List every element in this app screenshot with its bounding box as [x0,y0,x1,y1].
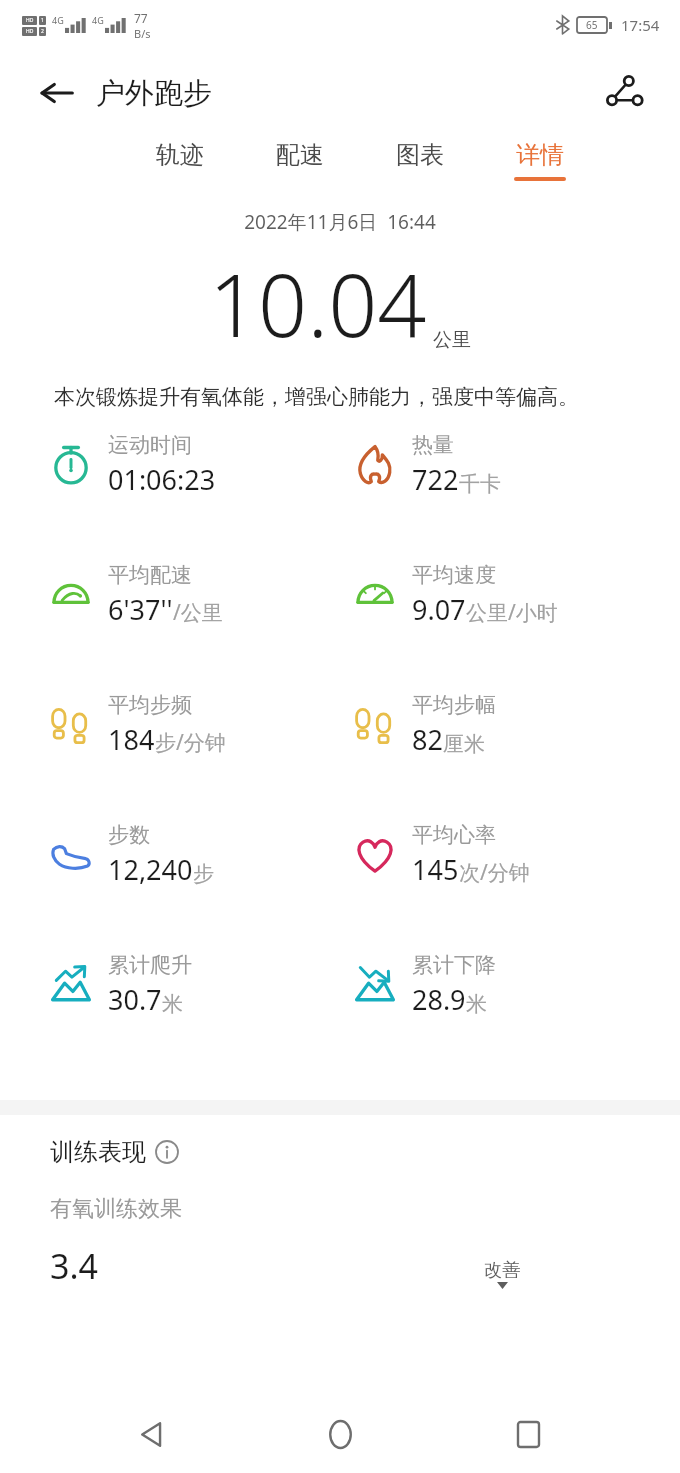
staticText: 2022年11月6日 16:44 [0,209,680,235]
staticText: 17:54 [621,15,660,35]
staticText: 轨迹 [156,140,204,170]
staticText: 次/分钟 [459,858,530,887]
button[interactable]: 热量 [348,432,680,498]
button[interactable]: Back [116,1398,188,1470]
button[interactable]: Recents [492,1398,564,1470]
button[interactable]: 图表 [390,136,450,185]
staticText: 千卡 [459,471,501,497]
staticText: 步/分钟 [155,728,226,757]
button[interactable]: 配速 [270,136,330,185]
staticText: 有氧训练效果 [50,1195,182,1223]
staticText: /公里 [173,598,223,627]
staticText: 9.07 [412,591,466,628]
staticText: B/s [134,26,151,41]
button[interactable]: Home [304,1398,376,1470]
staticText: 公里/小时 [466,598,558,627]
staticText: 12,240 [108,851,193,888]
button[interactable]: 平均心率 [348,822,680,888]
staticText: 82 [412,721,443,758]
staticText: 平均步频 [108,692,192,718]
staticText: HD [26,17,34,24]
staticText: 本次锻炼提升有氧体能，增强心肺能力，强度中等偏高。 [54,384,626,410]
button[interactable]: 步数 [44,822,340,888]
staticText: 2 [41,28,44,35]
staticText: 米 [466,991,487,1017]
staticText: 4G [52,14,64,26]
staticText: 平均步幅 [412,692,496,718]
staticText: 3.4 [50,1243,99,1289]
staticText: 01:06:23 [108,461,216,498]
staticText: 运动时间 [108,432,192,458]
button[interactable]: Share [596,65,652,121]
staticText: 6'37'' [108,591,173,628]
staticText: 4G [92,14,104,26]
staticText: 改善 [484,1259,520,1282]
staticText: 平均速度 [412,562,496,588]
staticText: 步数 [108,822,150,848]
button[interactable]: 累计下降 [348,952,680,1018]
staticText: 步 [193,861,214,887]
button[interactable]: 平均步幅 [348,692,680,758]
staticText: 722 [412,461,459,498]
button[interactable]: 平均配速 [44,562,340,628]
button[interactable]: 平均速度 [348,562,680,628]
staticText: 28.9 [412,981,466,1018]
staticText: 训练表现 [50,1137,146,1167]
staticText: 77 [134,10,148,26]
button[interactable]: 详情 [510,136,570,185]
button[interactable]: 累计爬升 [44,952,340,1018]
staticText: 累计下降 [412,952,496,978]
button[interactable]: 运动时间 [44,432,340,498]
button[interactable]: Back [36,72,212,114]
button[interactable]: 训练表现 [50,1137,180,1167]
staticText: 米 [162,991,183,1017]
staticText: 公里 [433,328,471,352]
button[interactable]: 平均步频 [44,692,340,758]
staticText: 65 [586,18,598,32]
staticText: 30.7 [108,981,162,1018]
staticText: 厘米 [443,731,485,757]
staticText: 详情 [516,140,564,170]
staticText: 平均配速 [108,562,192,588]
button[interactable]: 轨迹 [150,136,210,185]
staticText: 1 [41,17,44,24]
other: Info [154,1139,180,1165]
staticText: 平均心率 [412,822,496,848]
staticText: 户外跑步 [96,75,212,112]
staticText: HD [26,28,34,35]
staticText: 184 [108,721,155,758]
staticText: 热量 [412,432,454,458]
staticText: 145 [412,851,459,888]
staticText: 配速 [276,140,324,170]
staticText: 10.04 [209,245,427,362]
staticText: 累计爬升 [108,952,192,978]
staticText: 图表 [396,140,444,170]
other: Back [36,72,78,114]
